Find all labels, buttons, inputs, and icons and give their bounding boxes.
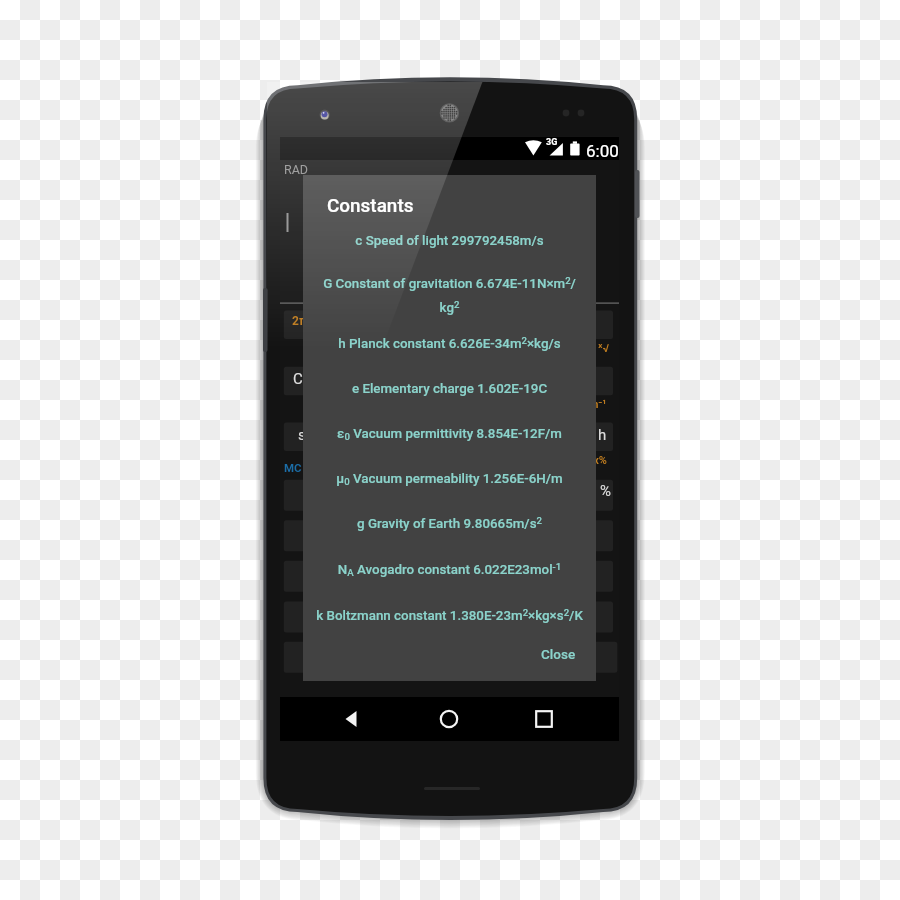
button[interactable]: c Speed of light 299792458m/s <box>303 220 596 262</box>
staticText: RAD <box>284 162 309 177</box>
staticText: Constants <box>327 194 414 216</box>
button[interactable]: g Gravity of Earth 9.80665m/s2 <box>303 502 596 544</box>
staticText: Close <box>541 646 576 662</box>
button[interactable]: ε0 Vacuum permittivity 8.854E-12F/m <box>303 413 596 455</box>
staticText: h Planck constant 6.626E-34m2×kg/s <box>314 335 585 351</box>
staticText: MC <box>284 461 302 474</box>
button[interactable]: k Boltzmann constant 1.380E-23m2×kg×s2/K <box>303 594 596 636</box>
staticText: G Constant of gravitation 6.674E-11N×m2/… <box>314 275 585 315</box>
staticText: 2π <box>292 314 307 328</box>
staticText: Cl <box>293 370 307 388</box>
button[interactable]: Recent apps <box>533 708 555 730</box>
button[interactable]: G Constant of gravitation 6.674E-11N×m2/… <box>303 262 596 320</box>
button[interactable]: μ0 Vacuum permeability 1.256E-6H/m <box>303 458 596 500</box>
staticText: ε0 Vacuum permittivity 8.854E-12F/m <box>314 426 585 443</box>
staticText: 3G <box>546 137 558 148</box>
staticText: s <box>298 426 306 444</box>
button[interactable]: e Elementary charge 1.602E-19C <box>303 368 596 410</box>
staticText: μ0 Vacuum permeability 1.256E-6H/m <box>314 471 585 488</box>
staticText: 6:00 <box>586 141 619 161</box>
button[interactable]: h Planck constant 6.626E-34m2×kg/s <box>303 322 596 364</box>
staticText: NA Avogadro constant 6.022E23mol-1 <box>314 561 585 578</box>
staticText: ˣ√ <box>598 342 609 355</box>
button[interactable]: NA Avogadro constant 6.022E23mol-1 <box>303 548 596 590</box>
button[interactable]: Back <box>341 708 363 730</box>
staticText: -x% <box>589 454 607 467</box>
staticText: e Elementary charge 1.602E-19C <box>314 381 585 397</box>
staticText: c Speed of light 299792458m/s <box>314 233 585 249</box>
button[interactable]: Home <box>438 708 460 730</box>
staticText: h <box>598 426 607 444</box>
staticText: % <box>600 482 611 500</box>
staticText: nh⁻¹ <box>586 398 607 411</box>
button[interactable]: Close <box>527 637 581 667</box>
staticText: g Gravity of Earth 9.80665m/s2 <box>314 515 585 531</box>
staticText: k Boltzmann constant 1.380E-23m2×kg×s2/K <box>314 607 585 623</box>
